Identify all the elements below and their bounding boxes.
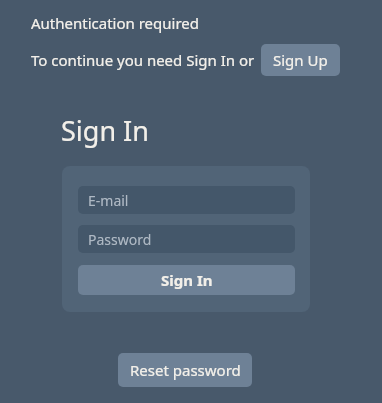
staticText: Authentication required — [31, 13, 200, 33]
button[interactable]: Sign In — [78, 265, 295, 295]
button[interactable]: Sign Up — [261, 44, 340, 76]
button[interactable]: Password — [78, 225, 295, 253]
button[interactable]: E-mail — [78, 186, 295, 214]
staticText: E-mail — [88, 191, 129, 210]
staticText: Sign Up — [273, 50, 328, 70]
staticText: Reset password — [130, 360, 241, 380]
button[interactable]: Reset password — [118, 353, 252, 387]
staticText: To continue you need Sign In or — [31, 50, 255, 70]
staticText: Sign In — [161, 270, 213, 290]
staticText: Password — [88, 230, 152, 249]
staticText: Sign In — [61, 112, 149, 149]
